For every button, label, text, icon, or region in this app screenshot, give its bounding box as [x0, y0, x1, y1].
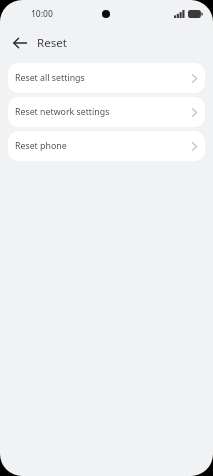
button[interactable]: Reset all settings	[8, 63, 205, 93]
staticText: Reset all settings	[15, 72, 85, 84]
other: Signal strength	[174, 10, 185, 18]
staticText: Reset	[37, 35, 67, 51]
button[interactable]: Reset network settings	[8, 97, 205, 127]
button[interactable]: Back	[10, 33, 30, 53]
other: Battery	[188, 10, 203, 18]
button[interactable]: Reset phone	[8, 131, 205, 161]
staticText: 10:00	[31, 8, 53, 20]
staticText: Reset phone	[15, 140, 67, 152]
staticText: Reset network settings	[15, 106, 110, 118]
